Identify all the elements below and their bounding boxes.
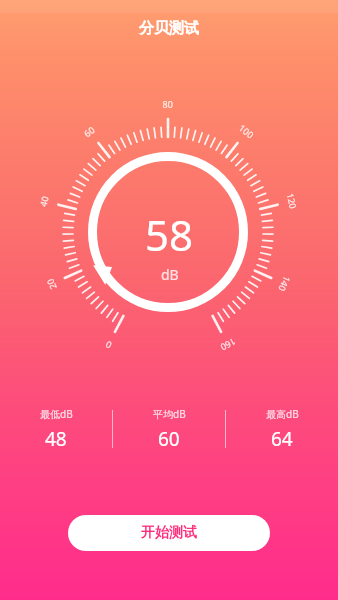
staticText: 58 bbox=[145, 206, 194, 263]
staticText: 开始测试 bbox=[141, 524, 197, 542]
staticText: dB bbox=[161, 265, 179, 284]
staticText: 最低dB bbox=[40, 407, 73, 421]
staticText: 48 bbox=[45, 426, 67, 452]
staticText: 60 bbox=[158, 426, 180, 452]
staticText: 平均dB bbox=[153, 407, 186, 421]
staticText: 64 bbox=[271, 426, 293, 452]
staticText: 分贝测试 bbox=[139, 19, 199, 38]
button[interactable]: 最低dB bbox=[0, 407, 112, 452]
button[interactable]: 平均dB bbox=[113, 407, 225, 452]
staticText: 最高dB bbox=[266, 407, 299, 421]
button[interactable]: 开始测试 bbox=[68, 515, 270, 551]
button[interactable]: 最高dB bbox=[226, 407, 338, 452]
